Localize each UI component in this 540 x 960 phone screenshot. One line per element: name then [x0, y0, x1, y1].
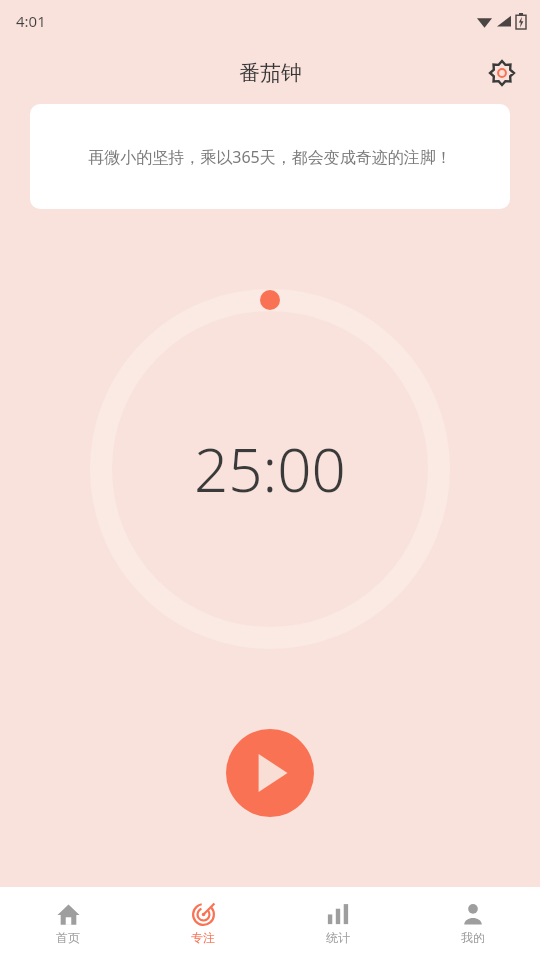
staticText: 番茄钟 [239, 60, 302, 86]
button[interactable]: 专注 [135, 894, 270, 953]
button[interactable]: 统计 [270, 894, 405, 953]
button[interactable]: 首页 [0, 894, 135, 953]
staticText: 再微小的坚持，乘以365天，都会变成奇迹的注脚！ [88, 146, 452, 168]
staticText: 统计 [326, 930, 350, 945]
button[interactable]: 我的 [405, 894, 540, 953]
staticText: 25:00 [194, 428, 346, 510]
staticText: 首页 [56, 930, 80, 945]
button[interactable]: Settings [480, 51, 524, 95]
button[interactable]: 再微小的坚持，乘以365天，都会变成奇迹的注脚！ [30, 104, 510, 209]
staticText: 4:01 [16, 11, 46, 31]
staticText: 专注 [191, 930, 215, 945]
staticText: 我的 [461, 930, 485, 945]
button[interactable]: Start timer [226, 729, 314, 817]
